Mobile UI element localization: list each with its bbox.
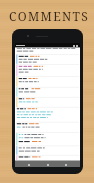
- button[interactable]: Back: [24, 161, 34, 168]
- staticText: COMMENTS: [2, 8, 94, 24]
- button[interactable]: Recent apps: [61, 161, 71, 168]
- button[interactable]: Home: [43, 161, 53, 168]
- button[interactable]: [15, 43, 80, 167]
